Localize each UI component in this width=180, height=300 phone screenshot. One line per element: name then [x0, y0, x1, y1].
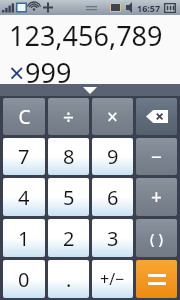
- button[interactable]: 6: [92, 178, 133, 216]
- staticText: 7: [18, 143, 30, 170]
- staticText: 5: [63, 184, 75, 211]
- button[interactable]: 3: [92, 219, 133, 257]
- button[interactable]: 1: [3, 219, 45, 257]
- button[interactable]: C: [3, 98, 45, 135]
- staticText: 16:57: [137, 2, 161, 14]
- button[interactable]: 7: [3, 138, 45, 175]
- button[interactable]: 2: [48, 219, 89, 257]
- staticText: −: [151, 144, 162, 170]
- button[interactable]: 8: [48, 138, 89, 175]
- staticText: 3: [107, 225, 119, 252]
- button[interactable]: 5: [48, 178, 89, 216]
- staticText: 9: [107, 143, 119, 170]
- button[interactable]: 4: [3, 178, 45, 216]
- button[interactable]: +/−: [92, 260, 133, 298]
- staticText: 2: [63, 225, 75, 252]
- staticText: ÷: [63, 104, 74, 130]
- button[interactable]: +: [136, 178, 177, 216]
- staticText: ×: [9, 54, 25, 84]
- staticText: 999: [25, 54, 72, 84]
- button[interactable]: ÷: [48, 98, 89, 135]
- button[interactable]: 9: [92, 138, 133, 175]
- staticText: 4: [18, 184, 30, 211]
- staticText: 1: [18, 225, 30, 252]
- staticText: C: [18, 104, 31, 130]
- staticText: +: [151, 184, 162, 210]
- staticText: ×: [107, 104, 118, 130]
- button[interactable]: Equals: [136, 260, 177, 298]
- staticText: 123,456,789: [9, 17, 163, 54]
- staticText: 0: [18, 266, 30, 293]
- staticText: .: [66, 266, 72, 293]
- button[interactable]: Backspace: [136, 98, 177, 135]
- button[interactable]: .: [48, 260, 89, 298]
- button[interactable]: ×: [92, 98, 133, 135]
- staticText: ( ): [150, 228, 163, 248]
- button[interactable]: 0: [3, 260, 45, 298]
- button[interactable]: −: [136, 138, 177, 175]
- button[interactable]: ( ): [136, 219, 177, 257]
- staticText: 6: [107, 184, 119, 211]
- staticText: +/−: [100, 268, 125, 290]
- staticText: 8: [63, 143, 75, 170]
